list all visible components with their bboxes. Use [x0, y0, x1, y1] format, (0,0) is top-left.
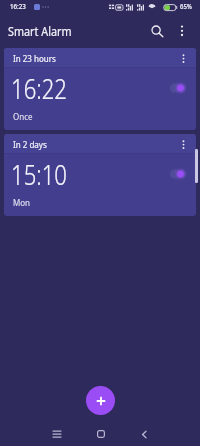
button[interactable]: Back — [131, 421, 157, 446]
button[interactable]: In 23 hours — [4, 48, 196, 130]
staticText: Once — [13, 111, 33, 122]
staticText: 15:10 — [11, 155, 67, 193]
button[interactable]: Recents — [44, 421, 70, 446]
button[interactable]: Toggle alarm — [166, 167, 186, 181]
staticText: 16:22 — [11, 69, 67, 107]
button[interactable]: Alarm options — [175, 136, 191, 152]
staticText: In 23 hours — [13, 53, 56, 64]
button[interactable]: Add alarm — [86, 386, 115, 415]
button[interactable]: More options — [170, 19, 194, 43]
button[interactable]: Home — [88, 421, 114, 446]
staticText: Smart Alarm — [8, 23, 72, 39]
button[interactable]: In 2 days — [4, 134, 196, 216]
button[interactable]: Search — [144, 18, 170, 44]
staticText: In 2 days — [13, 139, 47, 150]
button[interactable]: Toggle alarm — [166, 81, 186, 95]
staticText: 65% — [180, 2, 192, 12]
staticText: Mon — [13, 197, 31, 208]
staticText: 16:23 — [10, 2, 26, 12]
button[interactable]: Alarm options — [175, 50, 191, 66]
